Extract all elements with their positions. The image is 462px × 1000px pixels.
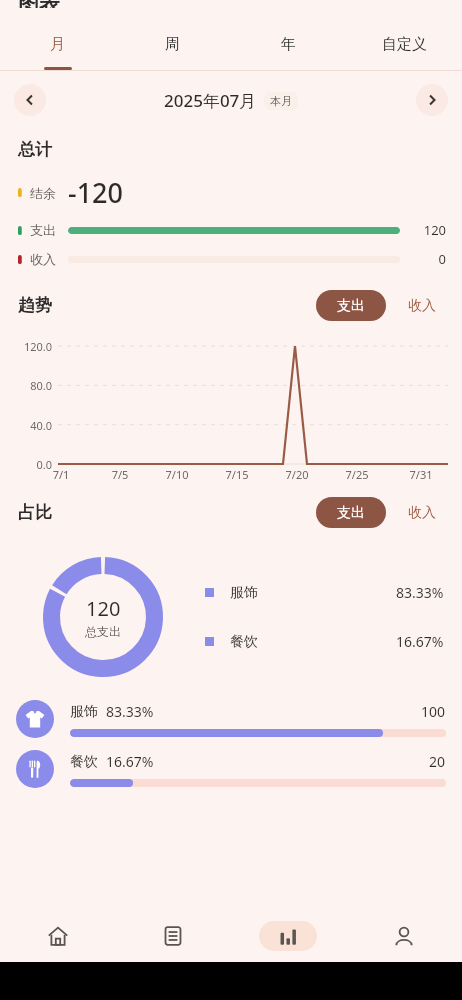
staticText: 100 [421,702,446,721]
staticText: 支出 [337,504,365,522]
staticText: 图表 [18,0,60,8]
staticText: 20 [429,752,446,771]
staticText: 83.33% [396,583,444,602]
staticText: 2025年07月 [164,89,257,112]
button[interactable]: 收入 [404,291,440,321]
staticText: 7/15 [220,467,254,482]
staticText: 占比 [18,502,52,523]
staticText: 自定义 [382,35,427,54]
staticText: 40.0 [8,418,52,433]
staticText: 月 [50,35,65,54]
button[interactable]: Profile [346,910,462,962]
staticText: -120 [68,174,123,211]
staticText: 餐饮 [70,753,98,771]
button[interactable]: 收入 [404,498,440,528]
staticText: 0 [412,250,446,268]
staticText: 支出 [30,222,56,238]
staticText: 周 [165,35,180,54]
staticText: 支出 [337,297,365,315]
button[interactable]: Next month [416,84,448,116]
staticText: 83.33% [106,702,154,721]
staticText: 7/1 [44,467,78,482]
button[interactable]: 餐饮 [16,750,446,788]
button[interactable]: 服饰 [16,700,446,738]
button[interactable]: Records [115,910,230,962]
button[interactable]: 餐饮 [205,632,444,651]
staticText: 总支出 [85,624,121,639]
button[interactable]: Previous month [14,84,46,116]
staticText: 收入 [408,297,436,315]
staticText: 总计 [18,139,52,160]
staticText: 服饰 [70,703,98,721]
button[interactable]: 支出 [316,497,386,528]
staticText: 7/5 [103,467,137,482]
button[interactable]: 本月 [264,92,298,110]
staticText: 7/10 [160,467,194,482]
staticText: 餐饮 [230,633,258,651]
staticText: 收入 [408,504,436,522]
button[interactable]: Home [0,910,115,962]
staticText: 0.0 [8,457,52,472]
button[interactable]: 支出 [316,290,386,321]
button[interactable]: 服饰 [205,583,444,602]
staticText: 7/25 [340,467,374,482]
staticText: 16.67% [106,752,154,771]
staticText: 120 [86,595,121,622]
staticText: 16.67% [396,632,444,651]
staticText: 80.0 [8,378,52,393]
staticText: 120.0 [8,339,52,354]
staticText: 趋势 [18,295,52,316]
staticText: 年 [281,35,296,54]
staticText: 本月 [270,94,292,108]
button[interactable]: 自定义 [346,18,462,70]
staticText: 7/31 [404,467,438,482]
staticText: 120 [412,221,446,239]
staticText: 结余 [30,185,56,201]
button[interactable]: Charts [230,910,346,962]
button[interactable]: 月 [0,18,115,70]
button[interactable]: 年 [230,18,346,70]
staticText: 服饰 [230,584,258,602]
staticText: 7/20 [280,467,314,482]
staticText: 收入 [30,251,56,267]
button[interactable]: 周 [115,18,230,70]
